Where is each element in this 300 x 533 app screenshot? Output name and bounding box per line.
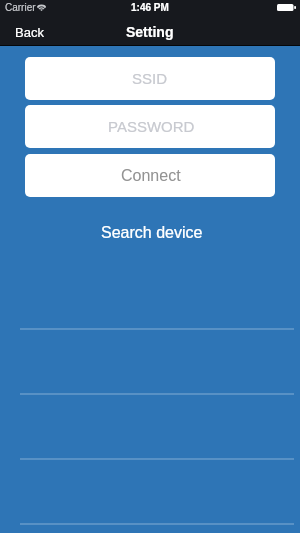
- button[interactable]: Device row: [0, 265, 300, 330]
- staticText: Setting: [126, 24, 174, 40]
- button[interactable]: PASSWORD: [25, 105, 275, 148]
- staticText: Connect: [121, 167, 181, 185]
- staticText: 1:46 PM: [131, 2, 169, 13]
- staticText: Carrier: [5, 2, 36, 13]
- other: Wi-Fi: [37, 4, 46, 11]
- button[interactable]: Search device: [0, 221, 300, 245]
- staticText: SSID: [132, 70, 168, 87]
- button[interactable]: Device row: [0, 330, 300, 395]
- button[interactable]: Device row: [0, 460, 300, 525]
- other: Battery full: [277, 4, 296, 11]
- staticText: Search device: [101, 224, 203, 242]
- button[interactable]: Device row: [0, 395, 300, 460]
- button[interactable]: SSID: [25, 57, 275, 100]
- button[interactable]: Back: [0, 19, 72, 45]
- staticText: PASSWORD: [108, 118, 195, 135]
- button[interactable]: Connect: [25, 154, 275, 197]
- staticText: Back: [15, 25, 44, 40]
